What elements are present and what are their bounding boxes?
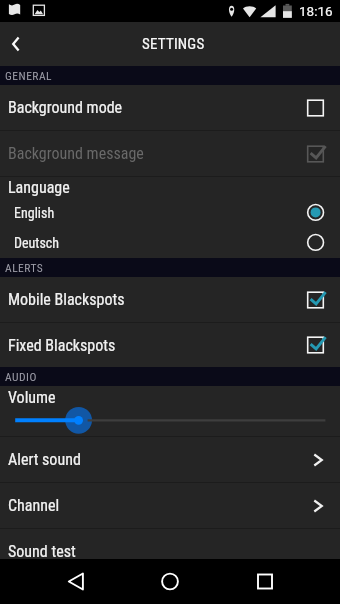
button[interactable]: Channel <box>0 483 340 528</box>
staticText: Background mode <box>8 98 302 117</box>
staticText: AUDIO <box>5 370 37 383</box>
button[interactable]: Navigate up <box>0 22 44 66</box>
button[interactable]: Sound test <box>0 529 340 574</box>
button[interactable]: Home <box>140 559 200 604</box>
button[interactable]: Fixed Blackspots <box>0 323 340 367</box>
staticText: ALERTS <box>5 261 44 274</box>
button[interactable]: Background message <box>0 131 340 176</box>
button[interactable]: Alert sound <box>0 437 340 482</box>
staticText: Background message <box>8 144 302 163</box>
button[interactable]: English <box>0 198 340 228</box>
staticText: Sound test <box>8 542 328 561</box>
staticText: Volume <box>8 388 56 407</box>
staticText: Alert sound <box>8 450 308 469</box>
staticText: English <box>14 205 302 221</box>
staticText: Deutsch <box>14 235 302 251</box>
staticText: 18:16 <box>299 3 333 19</box>
button[interactable]: Deutsch <box>0 228 340 258</box>
staticText: Mobile Blackspots <box>8 290 302 309</box>
staticText: Language <box>8 178 70 197</box>
staticText: GENERAL <box>5 69 53 82</box>
staticText: Channel <box>8 496 308 515</box>
button[interactable]: Volume <box>0 386 340 436</box>
staticText: SETTINGS <box>142 35 205 53</box>
button[interactable]: Mobile Blackspots <box>0 277 340 322</box>
button[interactable]: Recent apps <box>235 559 295 604</box>
button[interactable]: Back <box>47 559 107 604</box>
staticText: Fixed Blackspots <box>8 336 302 355</box>
button[interactable]: Background mode <box>0 85 340 130</box>
